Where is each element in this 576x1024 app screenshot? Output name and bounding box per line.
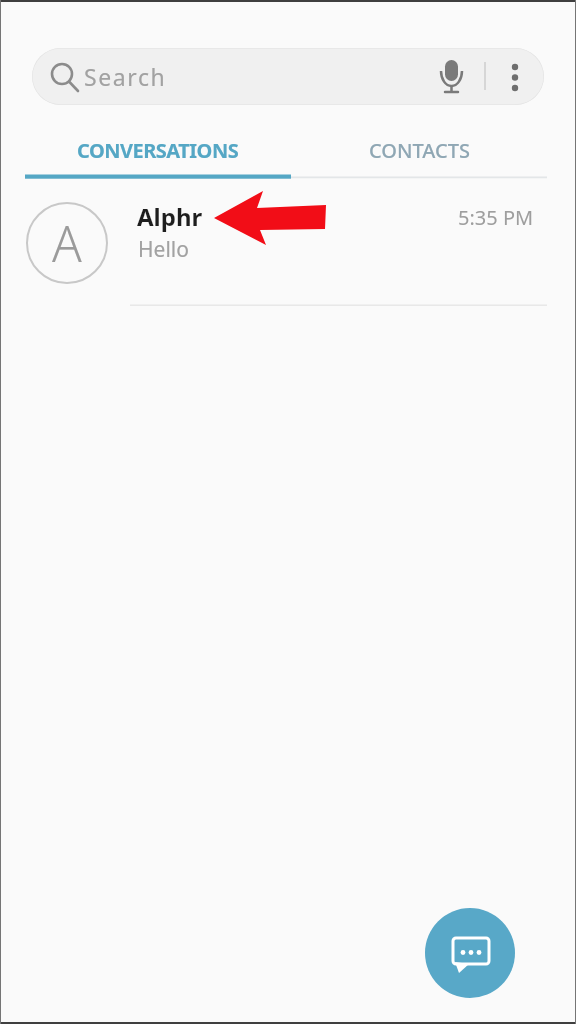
staticText: 5:35 PM	[458, 204, 534, 231]
staticText: CONVERSATIONS	[77, 137, 239, 164]
button[interactable]: A	[0, 180, 576, 306]
staticText: Hello	[138, 235, 189, 264]
staticText: A	[52, 210, 82, 277]
staticText: Alphr	[137, 200, 203, 233]
button[interactable]: CONVERSATIONS	[25, 122, 291, 179]
button[interactable]	[425, 908, 515, 998]
staticText: Search	[84, 61, 167, 92]
staticText: CONTACTS	[369, 137, 470, 164]
button[interactable]: Search	[32, 48, 544, 105]
button[interactable]: CONTACTS	[291, 122, 547, 179]
